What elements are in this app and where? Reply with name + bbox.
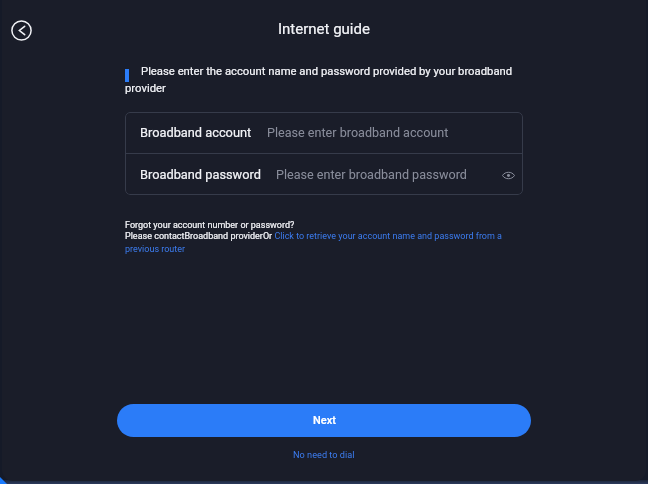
staticText: Broadband account <box>140 125 252 140</box>
button[interactable]: Next <box>117 404 531 437</box>
staticText: Please enter the account name and passwo… <box>125 65 518 95</box>
button[interactable]: Show password <box>498 165 518 185</box>
staticText: Please enter broadband password <box>276 167 467 182</box>
staticText: Internet guide <box>278 20 370 38</box>
button[interactable]: Broadband account <box>125 112 523 153</box>
button[interactable]: Broadband password <box>125 154 523 195</box>
staticText: Please enter broadband account <box>267 125 449 140</box>
button[interactable]: Back <box>10 19 33 42</box>
button[interactable]: No need to dial <box>283 445 365 464</box>
staticText: Next <box>313 414 336 427</box>
staticText: Broadband password <box>140 167 261 182</box>
button[interactable]: Please contactBroadband providerOr Click… <box>125 231 523 254</box>
staticText: Forgot your account number or password? <box>125 220 295 231</box>
staticText: No need to dial <box>293 449 355 460</box>
